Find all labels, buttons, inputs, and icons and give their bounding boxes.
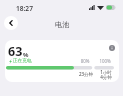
staticText: 23分钟 bbox=[77, 71, 95, 77]
staticText: 63 bbox=[8, 43, 23, 60]
button[interactable]: Back bbox=[4, 16, 18, 30]
button[interactable]: Info bbox=[109, 45, 115, 51]
button[interactable]: Info bbox=[5, 40, 119, 82]
staticText: 正在充电 bbox=[13, 58, 32, 64]
staticText: 100% bbox=[98, 58, 112, 64]
staticText: 80% bbox=[79, 58, 91, 64]
staticText: 1小时 4分钟 bbox=[97, 69, 115, 80]
staticText: % bbox=[23, 51, 29, 59]
staticText: 18:27 bbox=[16, 4, 33, 13]
staticText: 电池 bbox=[55, 20, 69, 29]
